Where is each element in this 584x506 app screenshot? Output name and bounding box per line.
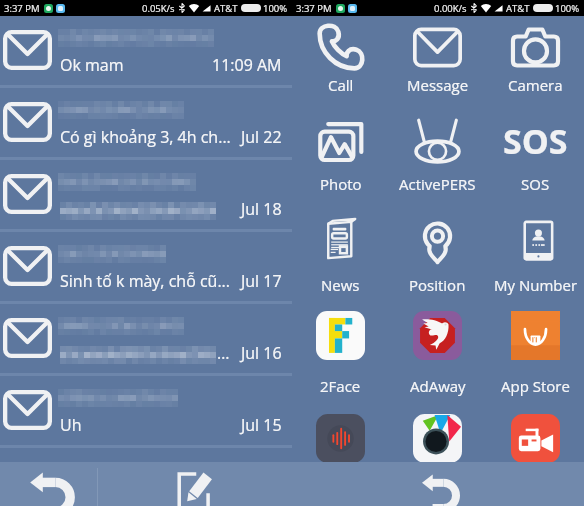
staticText: Jul 22 xyxy=(241,126,282,148)
staticText: Jul 16 xyxy=(241,342,282,364)
button[interactable]: Back xyxy=(0,462,97,506)
button[interactable]: News xyxy=(292,212,389,282)
button[interactable]: 2Face xyxy=(292,309,389,377)
staticText: 0.05K/s xyxy=(142,2,175,15)
staticText: My Number xyxy=(494,275,578,295)
button[interactable]: Position xyxy=(389,212,486,282)
button[interactable]: … xyxy=(0,304,292,373)
button[interactable]: Jul 18 xyxy=(0,160,292,229)
button[interactable]: Compose message xyxy=(98,462,292,506)
button[interactable]: Back xyxy=(292,462,584,506)
button[interactable]: Photo xyxy=(292,112,389,182)
button[interactable]: Sinh tố k mày, chỗ cũ... xyxy=(0,232,292,301)
staticText: 100% xyxy=(263,2,288,15)
button[interactable]: Call xyxy=(292,19,389,89)
staticText: Call xyxy=(328,75,354,95)
button[interactable]: AdAway xyxy=(389,309,486,377)
staticText: Jul 17 xyxy=(241,270,282,292)
staticText: Có gì khoảng 3, 4h ch... xyxy=(60,126,231,148)
staticText: Photo xyxy=(320,174,362,194)
staticText: Uh xyxy=(60,414,82,436)
staticText: 3:37 PM xyxy=(296,2,332,15)
button[interactable]: Message xyxy=(389,19,486,89)
staticText: AT&T xyxy=(214,2,238,15)
staticText: Sinh tố k mày, chỗ cũ... xyxy=(60,270,230,292)
button[interactable]: Camera xyxy=(487,19,584,89)
staticText: News xyxy=(321,275,360,295)
button[interactable]: SOS xyxy=(487,112,584,182)
button[interactable]: App xyxy=(389,412,486,480)
button[interactable]: App xyxy=(487,412,584,480)
button[interactable]: App xyxy=(292,412,389,480)
staticText: 0.00K/s xyxy=(434,2,467,15)
button[interactable]: Có gì khoảng 3, 4h ch... xyxy=(0,88,292,157)
staticText: ActivePERS xyxy=(399,174,476,194)
staticText: 100% xyxy=(555,2,580,15)
staticText: AT&T xyxy=(506,2,530,15)
staticText: AdAway xyxy=(410,376,466,396)
staticText: SOS xyxy=(503,118,568,164)
staticText: 2Face xyxy=(320,376,361,396)
staticText: Message xyxy=(407,75,469,95)
staticText: Camera xyxy=(508,75,563,95)
staticText: Position xyxy=(409,275,466,295)
staticText: Ok mam xyxy=(60,54,124,76)
staticText: SOS xyxy=(521,174,550,194)
staticText: App Store xyxy=(501,376,570,396)
staticText: Jul 15 xyxy=(241,414,282,436)
button[interactable]: My Number xyxy=(487,212,584,282)
button[interactable]: ActivePERS xyxy=(389,112,486,182)
staticText: Jul 18 xyxy=(241,198,282,220)
staticText: 3:37 PM xyxy=(4,2,40,15)
button[interactable]: App Store xyxy=(487,309,584,377)
staticText: 11:09 AM xyxy=(212,54,282,76)
button[interactable]: Ok mam xyxy=(0,16,292,85)
staticText: … xyxy=(217,342,230,364)
button[interactable]: Uh xyxy=(0,376,292,445)
